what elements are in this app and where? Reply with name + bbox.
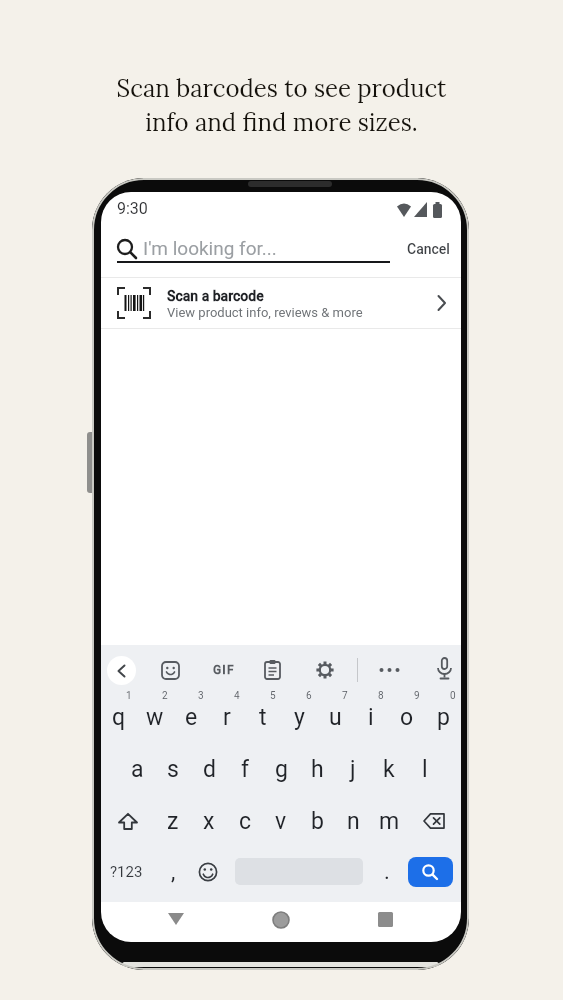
staticText: v (275, 808, 287, 835)
staticText: h (311, 756, 324, 783)
staticText: Scan a barcode (167, 288, 264, 304)
staticText: a (131, 756, 144, 783)
staticText: u (329, 704, 342, 731)
button[interactable]: w (138, 701, 172, 733)
staticText: t (259, 704, 267, 731)
staticText: 4 (234, 690, 240, 702)
button[interactable] (315, 660, 335, 680)
button[interactable] (378, 912, 393, 927)
button[interactable]: c (228, 805, 262, 837)
button[interactable] (408, 857, 453, 887)
button[interactable]: d (192, 753, 226, 785)
button[interactable]: f (228, 753, 262, 785)
staticText: x (203, 808, 215, 835)
staticText: p (437, 704, 450, 731)
button[interactable]: s (156, 753, 190, 785)
button[interactable]: Cancel (397, 236, 453, 262)
staticText: o (400, 704, 414, 731)
staticText: 0 (450, 690, 456, 702)
staticText: f (241, 756, 249, 783)
button[interactable]: n (336, 805, 370, 837)
staticText: e (185, 704, 198, 731)
button[interactable] (107, 656, 136, 685)
staticText: l (422, 756, 428, 783)
staticText: . (384, 859, 390, 885)
staticText: 9 (414, 690, 420, 702)
staticText: j (350, 756, 356, 783)
staticText: ?123 (110, 863, 143, 881)
button[interactable]: , (158, 856, 188, 888)
button[interactable]: m (372, 805, 406, 837)
staticText: c (239, 808, 252, 835)
staticText: z (167, 808, 179, 835)
staticText: , (171, 859, 176, 885)
button[interactable]: o (390, 701, 424, 733)
button[interactable]: t (246, 701, 280, 733)
staticText: Scan barcodes to see product info and fi… (0, 73, 563, 137)
staticText: 9:30 (117, 199, 148, 218)
button[interactable]: g (264, 753, 298, 785)
button[interactable] (437, 658, 452, 682)
button[interactable]: e (174, 701, 208, 733)
button[interactable] (264, 660, 281, 680)
button[interactable]: q (102, 701, 136, 733)
staticText: i (368, 704, 374, 731)
button[interactable] (101, 278, 461, 328)
staticText: w (146, 704, 164, 731)
staticText: m (379, 808, 400, 835)
button[interactable]: u (318, 701, 352, 733)
button[interactable]: l (408, 753, 442, 785)
staticText: 2 (162, 690, 168, 702)
button[interactable] (272, 911, 290, 929)
staticText: g (275, 756, 288, 783)
staticText: 3 (198, 690, 204, 702)
button[interactable]: r (210, 701, 244, 733)
button[interactable]: v (264, 805, 298, 837)
button[interactable] (118, 813, 138, 830)
staticText: n (347, 808, 360, 835)
staticText: GIF (213, 663, 235, 677)
staticText: q (112, 704, 126, 731)
staticText: 5 (270, 690, 276, 702)
button[interactable]: . (374, 856, 400, 888)
button[interactable] (113, 234, 393, 266)
staticText: 1 (126, 690, 132, 702)
button[interactable]: p (426, 701, 460, 733)
staticText: s (167, 756, 179, 783)
button[interactable] (423, 813, 446, 829)
staticText: 8 (378, 690, 384, 702)
staticText: 6 (306, 690, 312, 702)
button[interactable]: h (300, 753, 334, 785)
button[interactable]: y (282, 701, 316, 733)
button[interactable]: ?123 (105, 857, 147, 887)
staticText: 7 (342, 690, 348, 702)
staticText: r (223, 704, 231, 731)
button[interactable]: i (354, 701, 388, 733)
staticText: View product info, reviews & more (167, 305, 363, 320)
button[interactable] (378, 667, 401, 673)
staticText: y (294, 704, 305, 731)
staticText: k (383, 756, 395, 783)
staticText: Cancel (407, 241, 450, 257)
button[interactable]: a (120, 753, 154, 785)
staticText: d (203, 756, 216, 783)
button[interactable] (198, 862, 218, 882)
button[interactable] (168, 913, 184, 926)
button[interactable] (161, 661, 180, 680)
button[interactable]: x (192, 805, 226, 837)
button[interactable]: k (372, 753, 406, 785)
button[interactable]: z (156, 805, 190, 837)
staticText: I'm looking for... (143, 237, 277, 259)
button[interactable]: b (300, 805, 334, 837)
button[interactable]: j (336, 753, 370, 785)
button[interactable]: GIF (209, 658, 239, 682)
staticText: b (311, 808, 324, 835)
